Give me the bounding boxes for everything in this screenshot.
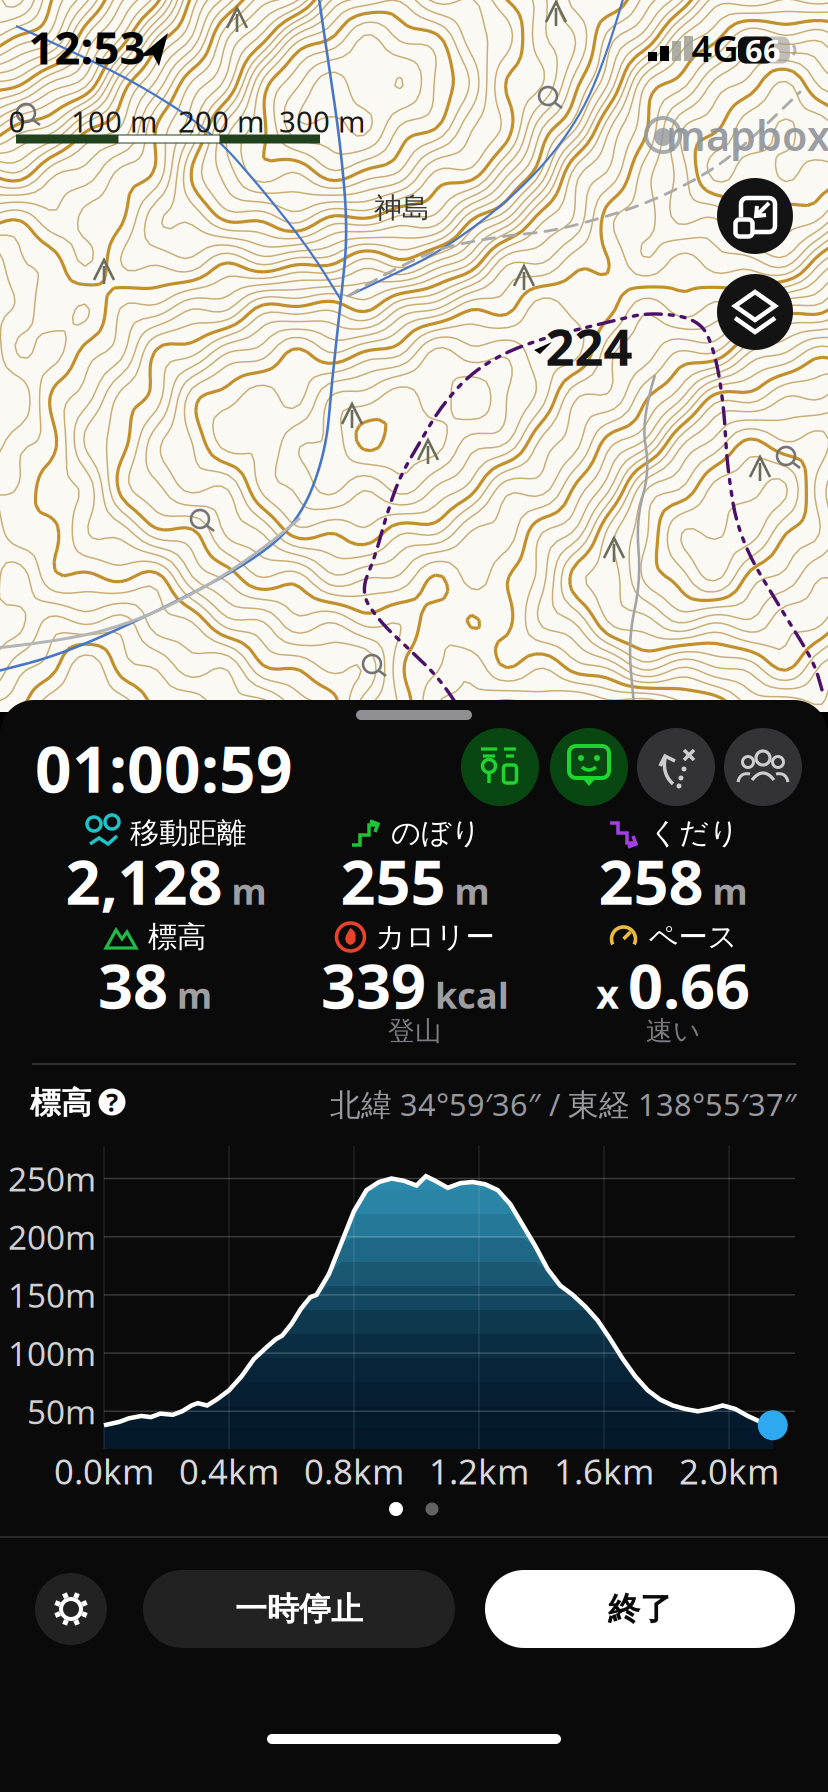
staticText: 移動距離 [130,815,246,851]
staticText: 0.0km [54,1448,154,1494]
staticText: 01:00:59 [35,725,293,810]
staticText: 0.4km [179,1448,279,1494]
button[interactable]: ルート [461,728,539,806]
staticText: m [712,867,747,915]
staticText: 200 m [178,101,264,140]
staticText: kcal [435,971,509,1019]
staticText: 2.0km [679,1448,779,1494]
staticText: 1.6km [554,1448,654,1494]
button[interactable]: 設定 [35,1573,107,1645]
staticText: 300 m [279,101,365,140]
staticText: 66 [745,30,781,70]
staticText: 1.2km [429,1448,529,1494]
staticText: x [596,967,619,1020]
staticText: ペース [648,919,737,955]
staticText: 標高 [30,1084,92,1122]
staticText: 標高 [148,919,206,955]
button[interactable]: ルートをスキップ [637,728,715,806]
staticText: 0 [8,101,25,140]
staticText: 100m [8,1331,96,1375]
staticText: 339 [321,944,426,1026]
staticText: 4G [691,24,738,72]
button[interactable]: ランドマーク [550,728,628,806]
staticText: 250m [8,1156,96,1201]
staticText: 255 [340,840,445,922]
button[interactable]: 終了 [485,1570,795,1648]
button[interactable]: グループ [724,728,802,806]
staticText: くだり [649,815,739,851]
staticText: 北緯 34°59′36″ / 東経 138°55′37″ [330,1084,797,1124]
staticText: ? [106,1085,118,1119]
staticText: 224 [545,312,632,380]
staticText: 200m [8,1215,96,1259]
staticText: mapbox [666,108,828,162]
button[interactable]: 地図レイヤー [717,274,793,350]
staticText: 0.66 [628,944,750,1026]
staticText: m [177,971,212,1019]
staticText: 0.8km [304,1448,404,1494]
staticText: 50m [27,1389,96,1433]
staticText: 100 m [71,101,157,140]
button[interactable]: 地図を縮小 [717,178,793,254]
button[interactable]: 一時停止 [143,1570,455,1648]
staticText: 150m [8,1273,96,1317]
staticText: カロリー [375,919,494,955]
button[interactable]: 標高の説明 [98,1088,125,1115]
staticText: 258 [598,840,703,922]
staticText: m [231,867,266,915]
staticText: 終了 [608,1589,672,1629]
staticText: 2,128 [65,840,222,922]
staticText: 登山 [388,1015,442,1047]
staticText: m [454,867,489,915]
staticText: 一時停止 [235,1589,363,1629]
staticText: 速い [646,1015,700,1047]
staticText: のぼり [391,815,481,851]
staticText: 38 [98,944,168,1026]
staticText: 神島 [374,191,430,225]
staticText: 12:53 [28,17,145,77]
